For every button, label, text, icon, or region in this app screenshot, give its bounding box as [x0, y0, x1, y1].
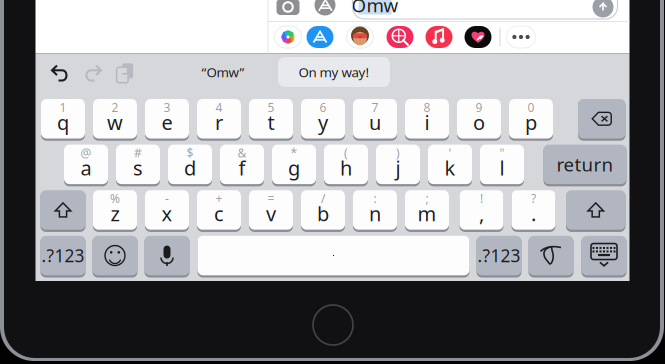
button[interactable]: 4: [197, 97, 241, 140]
staticText: a: [80, 155, 91, 181]
button[interactable]: Photos: [274, 26, 301, 48]
button[interactable]: 9: [457, 97, 501, 140]
button[interactable]: Space: [197, 234, 469, 277]
button[interactable]: 3: [145, 97, 189, 140]
button[interactable]: Redo: [83, 64, 102, 82]
staticText: d: [184, 155, 196, 181]
button[interactable]: -: [145, 189, 189, 231]
staticText: u: [369, 109, 381, 136]
staticText: x: [161, 200, 172, 227]
staticText: n: [369, 200, 381, 227]
staticText: -: [165, 190, 169, 206]
button[interactable]: &: [220, 143, 264, 186]
button[interactable]: 8: [405, 97, 449, 140]
button[interactable]: ": [480, 143, 524, 186]
button[interactable]: More apps: [506, 26, 535, 48]
button[interactable]: Images: [386, 26, 413, 48]
button[interactable]: @: [64, 143, 108, 186]
button[interactable]: 6: [301, 97, 345, 140]
staticText: 4: [215, 99, 222, 115]
staticText: j: [395, 155, 400, 181]
button[interactable]: Send: [592, 0, 613, 17]
button[interactable]: ;: [405, 189, 449, 231]
staticText: b: [317, 200, 329, 227]
staticText: return: [556, 152, 613, 177]
button[interactable]: (: [324, 143, 368, 186]
staticText: Omw: [351, 0, 398, 17]
staticText: ?: [531, 190, 536, 206]
staticText: ,: [479, 200, 484, 227]
staticText: 8: [423, 99, 430, 115]
button[interactable]: Numbers: [40, 234, 85, 277]
staticText: !: [480, 190, 483, 206]
button[interactable]: Shift: [566, 189, 625, 231]
staticText: On my way!: [298, 63, 369, 81]
button[interactable]: :: [353, 189, 397, 231]
button[interactable]: Memoji: [346, 26, 373, 48]
staticText: f: [238, 155, 245, 181]
staticText: +: [215, 190, 222, 206]
staticText: g: [288, 155, 300, 181]
button[interactable]: %: [93, 189, 137, 231]
button[interactable]: +: [197, 189, 241, 231]
staticText: w: [107, 109, 123, 136]
button[interactable]: ): [376, 143, 420, 186]
staticText: k: [444, 155, 455, 181]
staticText: l: [499, 155, 504, 181]
button[interactable]: Shift: [40, 189, 85, 231]
button[interactable]: Return: [543, 143, 626, 186]
staticText: %: [110, 190, 120, 206]
button[interactable]: 2: [93, 97, 137, 140]
button[interactable]: =: [249, 189, 293, 231]
button[interactable]: Undo: [50, 64, 69, 82]
button[interactable]: *: [272, 143, 316, 186]
button[interactable]: 0: [509, 97, 553, 140]
button[interactable]: ?: [511, 189, 555, 231]
button[interactable]: 1: [41, 97, 85, 140]
button[interactable]: Paste: [115, 62, 135, 84]
staticText: ): [396, 145, 400, 161]
staticText: v: [266, 200, 276, 227]
staticText: p: [525, 109, 537, 136]
button[interactable]: Hide keyboard: [581, 234, 626, 277]
staticText: =: [267, 190, 274, 206]
button[interactable]: Emoji: [92, 234, 137, 277]
staticText: .: [531, 200, 536, 227]
button[interactable]: 5: [249, 97, 293, 140]
button[interactable]: App Store: [314, 0, 335, 15]
button[interactable]: Camera: [276, 0, 299, 15]
staticText: (: [344, 145, 348, 161]
button[interactable]: Apple Music: [464, 26, 491, 48]
button[interactable]: 7: [353, 97, 397, 140]
button[interactable]: !: [459, 189, 503, 231]
staticText: s: [133, 155, 143, 181]
staticText: *: [290, 145, 297, 161]
button[interactable]: On my way!: [278, 57, 390, 87]
button[interactable]: /: [301, 189, 345, 231]
staticText: 3: [163, 99, 170, 115]
staticText: e: [161, 109, 172, 136]
staticText: 0: [527, 99, 534, 115]
button[interactable]: Handwriting: [528, 234, 573, 277]
button[interactable]: $: [168, 143, 212, 186]
button[interactable]: Delete: [578, 97, 625, 140]
staticText: q: [57, 109, 69, 136]
staticText: m: [417, 200, 436, 227]
button[interactable]: ': [428, 143, 472, 186]
button[interactable]: Dictate: [144, 234, 189, 277]
staticText: 9: [475, 99, 482, 115]
staticText: y: [318, 109, 328, 136]
staticText: 7: [371, 99, 378, 115]
button[interactable]: #: [116, 143, 160, 186]
staticText: c: [214, 200, 224, 227]
button[interactable]: Music: [425, 26, 452, 48]
staticText: .?123: [41, 244, 84, 267]
staticText: i: [424, 109, 429, 136]
staticText: ': [448, 145, 451, 161]
staticText: ": [499, 145, 504, 161]
staticText: :: [373, 190, 376, 206]
staticText: 5: [267, 99, 274, 115]
staticText: z: [110, 200, 119, 227]
button[interactable]: Numbers: [476, 234, 521, 277]
button[interactable]: App Store: [306, 26, 333, 48]
